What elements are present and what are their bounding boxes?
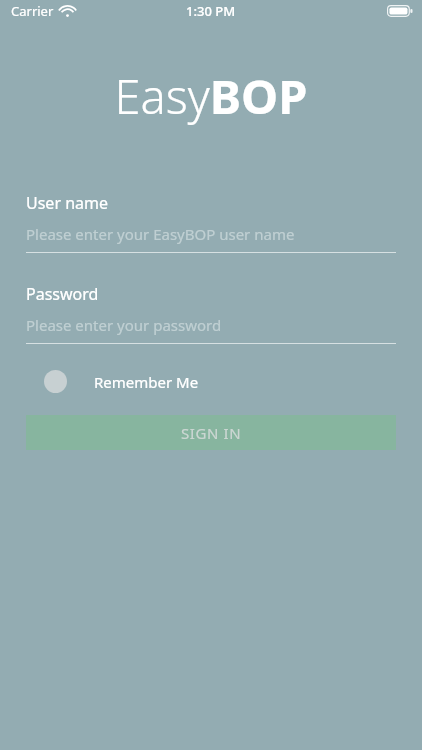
staticText: Password xyxy=(26,283,99,305)
button[interactable]: Remember Me xyxy=(42,366,201,397)
staticText: Remember Me xyxy=(94,372,199,392)
staticText: SIGN IN xyxy=(181,423,242,443)
staticText: User name xyxy=(26,192,109,214)
staticText: 1:30 PM xyxy=(186,2,236,20)
button[interactable]: SIGN IN xyxy=(26,415,396,450)
button[interactable]: Please enter your password xyxy=(26,315,396,335)
staticText: EasyBOP xyxy=(0,64,422,128)
staticText: Carrier xyxy=(11,2,54,20)
button[interactable]: Please enter your EasyBOP user name xyxy=(26,224,396,244)
